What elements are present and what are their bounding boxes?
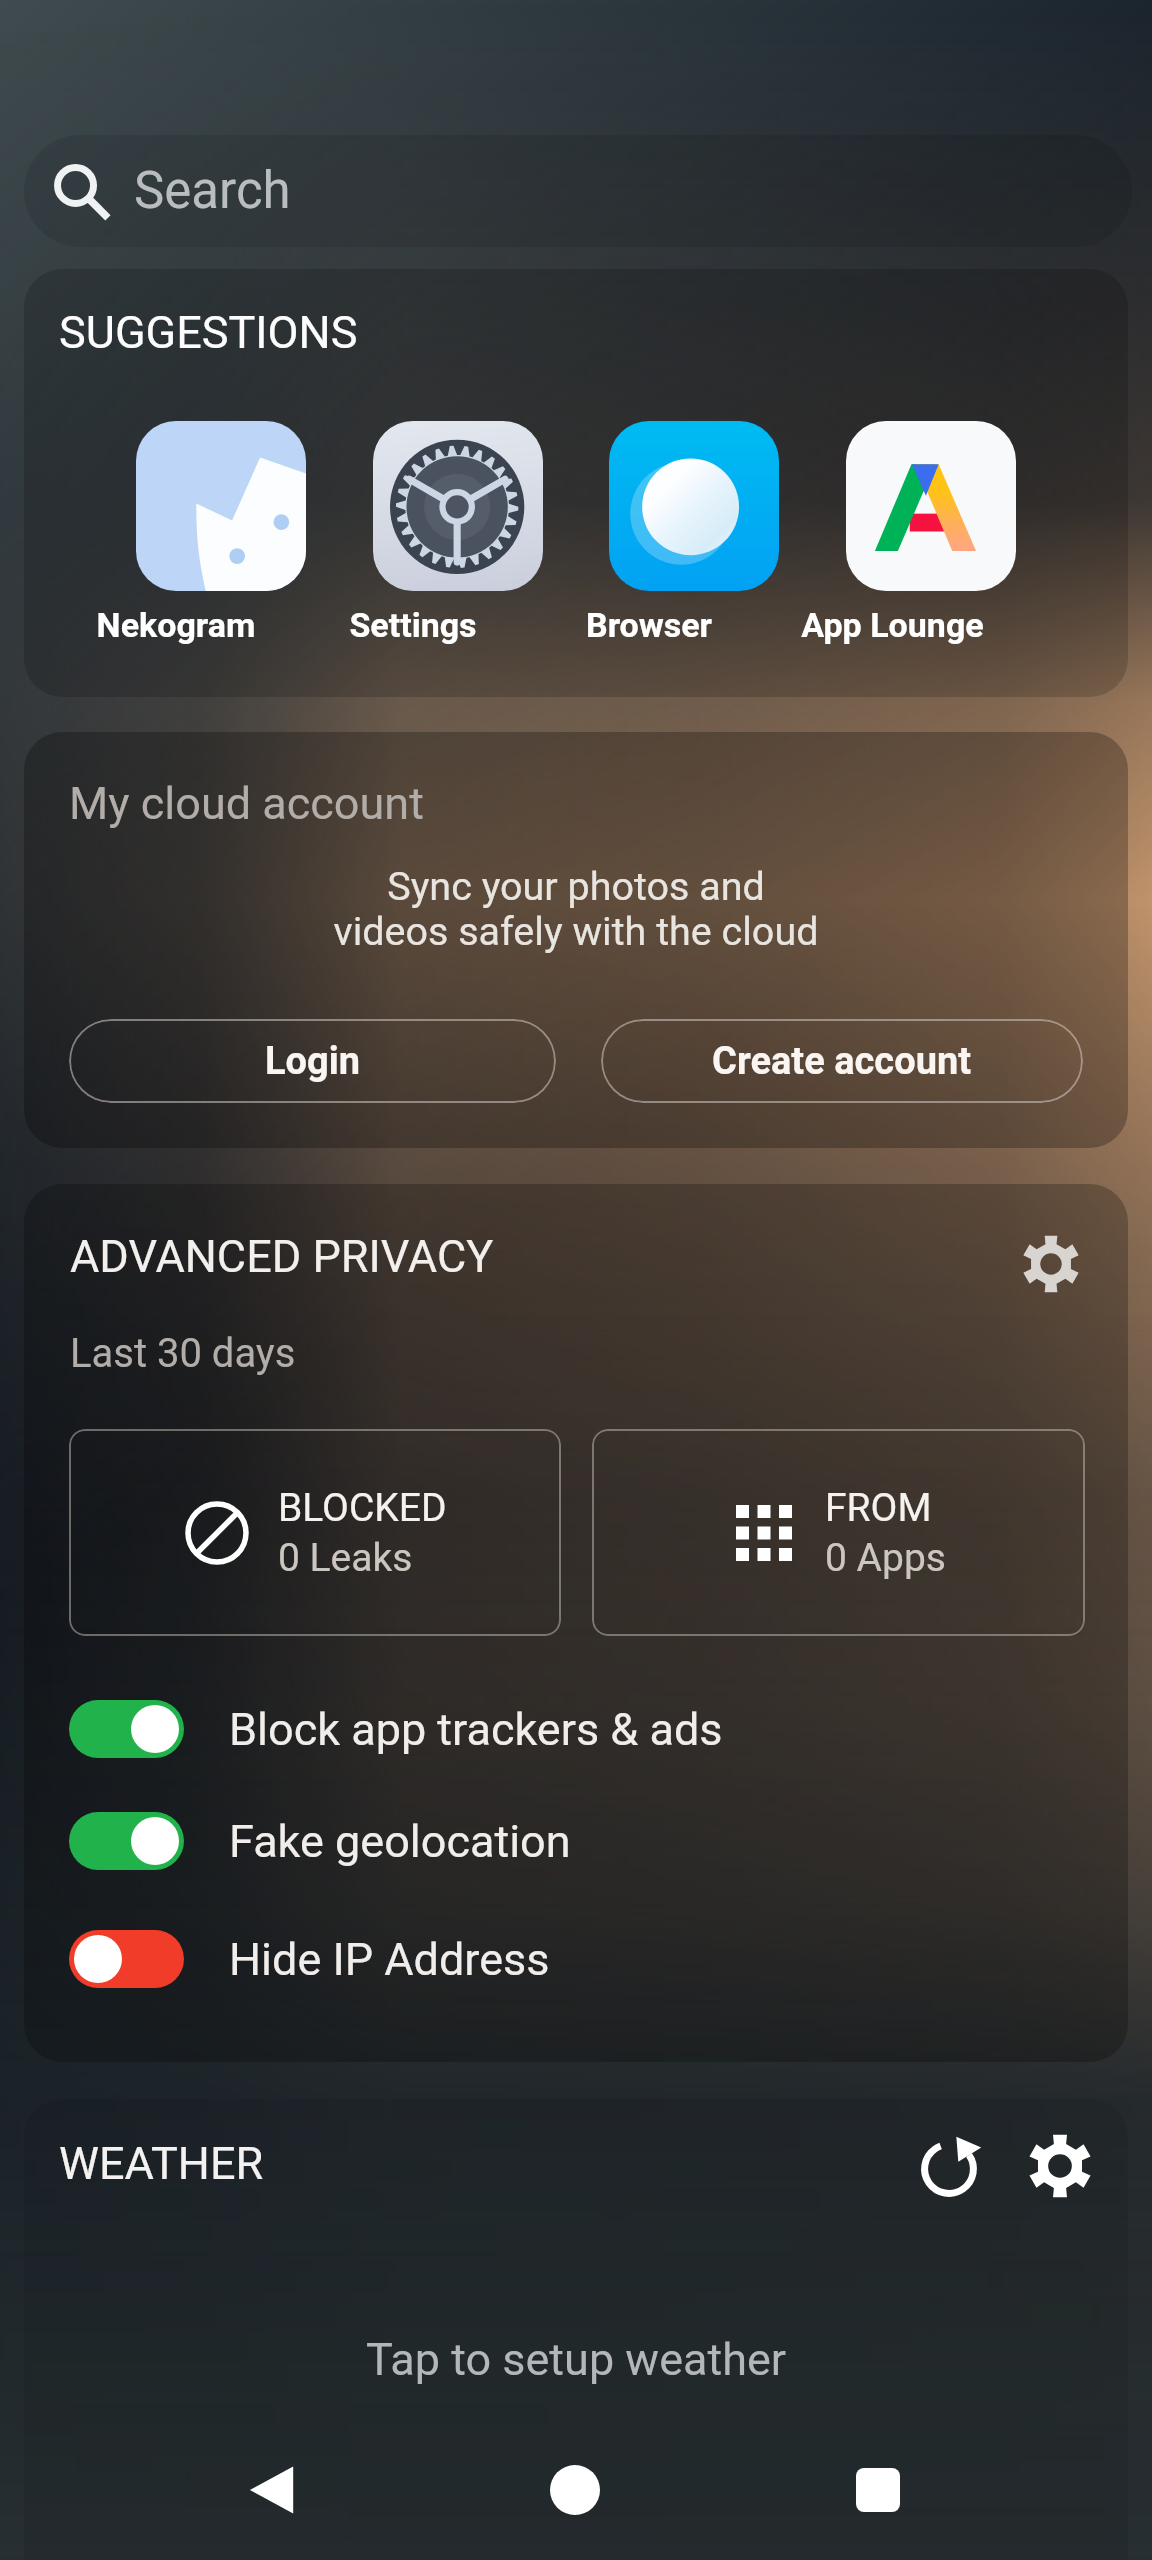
button[interactable]: Nekogram <box>136 421 306 651</box>
staticText: Browser <box>564 605 734 645</box>
button[interactable]: App Lounge <box>846 421 1016 651</box>
button[interactable]: Weather settings <box>1020 2126 1100 2206</box>
staticText: Create account <box>712 1039 972 1084</box>
staticText: WEATHER <box>59 2137 264 2190</box>
staticText: 0 Apps <box>825 1535 946 1581</box>
staticText: Search <box>134 161 291 221</box>
button[interactable]: BLOCKED <box>69 1429 561 1636</box>
button[interactable]: WEATHER <box>24 2099 1128 2560</box>
button[interactable]: Search <box>24 135 1132 247</box>
staticText: 0 Leaks <box>278 1535 413 1581</box>
button[interactable]: Create account <box>601 1019 1083 1103</box>
staticText: ADVANCED PRIVACY <box>70 1230 494 1283</box>
button[interactable]: Hide IP Address <box>69 1914 1083 2004</box>
button[interactable]: FROM <box>592 1429 1085 1636</box>
staticText: Tap to setup weather <box>24 2333 1128 2386</box>
button[interactable]: Fake geolocation <box>69 1796 1083 1886</box>
staticText: Block app trackers & ads <box>229 1703 723 1756</box>
staticText: Login <box>265 1039 361 1084</box>
button[interactable]: Refresh weather <box>909 2126 989 2206</box>
staticText: FROM <box>825 1485 932 1531</box>
button[interactable]: Recent apps <box>782 2420 974 2560</box>
staticText: BLOCKED <box>278 1485 447 1531</box>
staticText: Hide IP Address <box>229 1933 550 1986</box>
staticText: App Lounge <box>801 605 971 645</box>
button[interactable]: Browser <box>609 421 779 651</box>
staticText: My cloud account <box>69 777 424 830</box>
staticText: Fake geolocation <box>229 1815 571 1868</box>
staticText: Last 30 days <box>70 1330 296 1377</box>
button[interactable]: Settings <box>373 421 543 651</box>
button[interactable]: Home <box>479 2420 671 2560</box>
staticText: SUGGESTIONS <box>59 306 358 359</box>
staticText: Settings <box>328 605 498 645</box>
button[interactable]: Advanced privacy settings <box>1016 1229 1086 1299</box>
staticText: Nekogram <box>91 605 261 645</box>
button[interactable]: Back <box>176 2420 368 2560</box>
staticText: Sync your photos and videos safely with … <box>24 863 1128 955</box>
button[interactable]: Block app trackers & ads <box>69 1684 1083 1774</box>
button[interactable]: Login <box>69 1019 556 1103</box>
